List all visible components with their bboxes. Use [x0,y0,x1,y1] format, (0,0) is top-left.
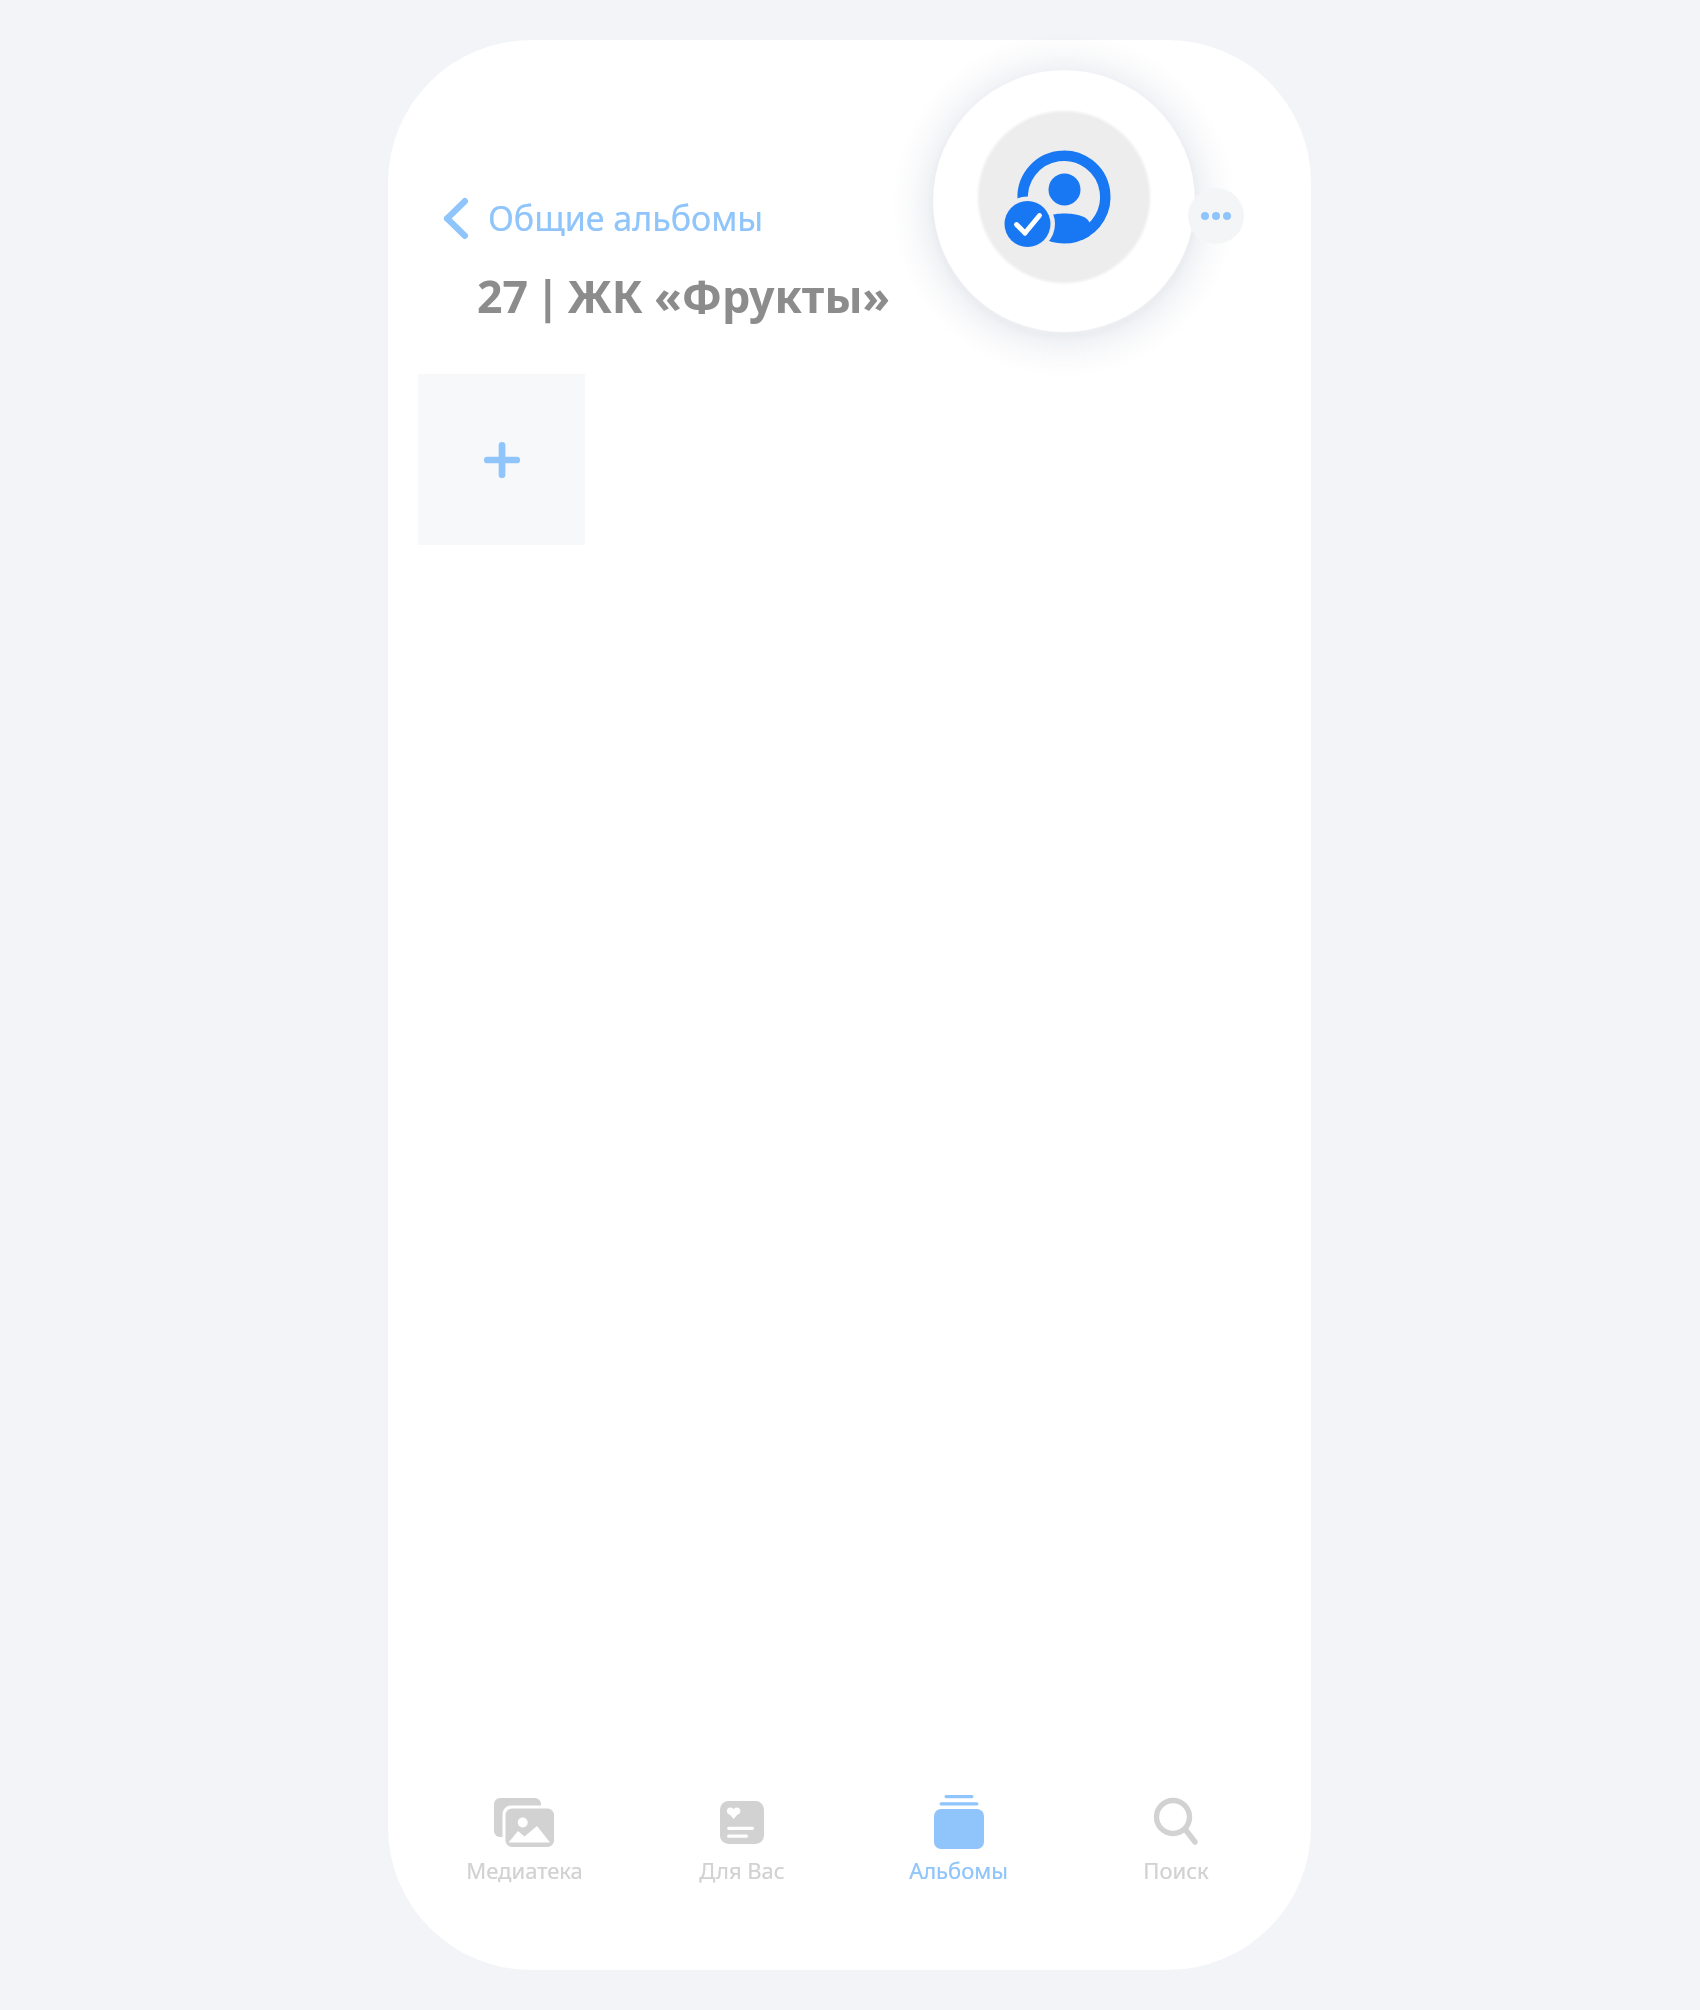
button[interactable]: Участники общего альбома [933,70,1195,332]
staticText: Поиск [1143,1855,1209,1885]
button[interactable]: Альбомы [850,1775,1067,1915]
button[interactable]: Создать альбом [418,374,585,545]
button[interactable]: Ещё [1188,188,1244,244]
button[interactable]: Для Вас [633,1775,850,1915]
staticText: Общие альбомы [488,195,764,241]
staticText: Альбомы [909,1855,1008,1885]
button[interactable]: Общие альбомы [444,195,764,241]
button[interactable]: Медиатека [415,1775,633,1915]
staticText: Для Вас [699,1855,785,1885]
staticText: 27 | ЖК «Фрукты» [477,265,890,326]
button[interactable]: Поиск [1067,1775,1284,1915]
staticText: Медиатека [466,1855,583,1885]
